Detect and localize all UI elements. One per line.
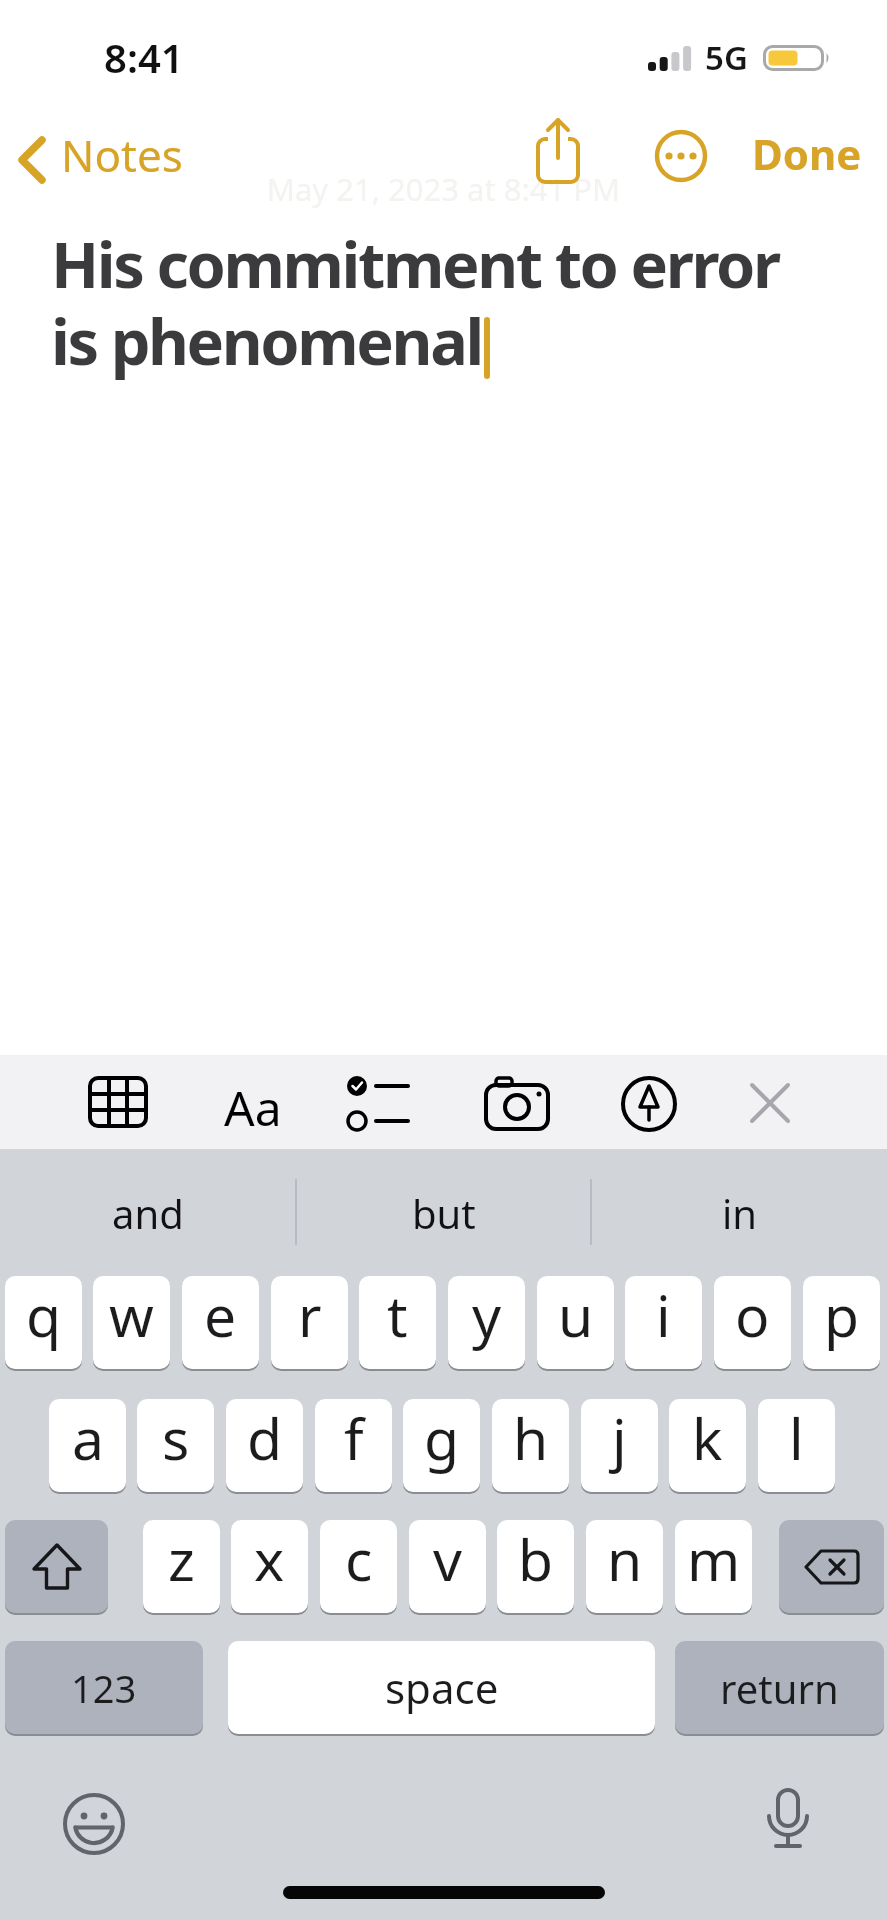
staticText: m (687, 1520, 741, 1598)
button[interactable]: c (320, 1520, 397, 1615)
staticText: e (204, 1276, 237, 1354)
staticText: Notes (61, 125, 183, 185)
button[interactable]: p (803, 1276, 880, 1371)
button[interactable] (748, 1081, 792, 1125)
button[interactable]: g (403, 1399, 480, 1494)
button[interactable] (60, 1790, 128, 1858)
staticText: f (344, 1399, 364, 1477)
staticText: n (607, 1520, 643, 1598)
button[interactable] (619, 1074, 679, 1134)
button[interactable]: m (675, 1520, 752, 1615)
button[interactable]: Notes (10, 125, 180, 187)
staticText: g (424, 1399, 460, 1477)
staticText: p (824, 1276, 860, 1354)
button[interactable] (779, 1520, 884, 1615)
staticText: Done (752, 125, 862, 182)
button[interactable] (527, 113, 589, 189)
button[interactable] (86, 1081, 150, 1141)
button[interactable] (484, 1077, 552, 1131)
button[interactable]: Aa (224, 1075, 282, 1140)
staticText: b (518, 1520, 554, 1598)
button[interactable]: return (675, 1641, 884, 1736)
button[interactable] (5, 1520, 108, 1615)
staticText: and (112, 1186, 184, 1240)
button[interactable]: i (625, 1276, 702, 1371)
button[interactable]: a (49, 1399, 126, 1494)
button[interactable]: j (581, 1399, 658, 1494)
staticText: y (472, 1276, 502, 1354)
staticText: i (656, 1276, 671, 1354)
staticText: but (412, 1186, 476, 1240)
staticText: w (109, 1276, 154, 1354)
button[interactable] (754, 1788, 822, 1862)
button[interactable]: k (669, 1399, 746, 1494)
staticText: v (433, 1520, 462, 1598)
button[interactable]: s (137, 1399, 214, 1494)
button[interactable]: l (758, 1399, 835, 1494)
button[interactable]: in (592, 1149, 887, 1276)
staticText: in (722, 1186, 758, 1240)
button[interactable] (650, 125, 712, 187)
button[interactable]: n (586, 1520, 663, 1615)
staticText: u (558, 1276, 594, 1354)
button[interactable]: Done (746, 125, 866, 187)
staticText: c (345, 1520, 373, 1598)
button[interactable]: h (492, 1399, 569, 1494)
button[interactable]: y (448, 1276, 525, 1371)
staticText: r (298, 1276, 322, 1354)
staticText: 123 (71, 1662, 137, 1714)
button[interactable]: q (5, 1276, 82, 1371)
button[interactable]: o (714, 1276, 791, 1371)
staticText: space (385, 1659, 499, 1716)
button[interactable]: d (226, 1399, 303, 1494)
button[interactable]: but (296, 1149, 591, 1276)
staticText: o (735, 1276, 770, 1354)
button[interactable]: r (271, 1276, 348, 1371)
button[interactable]: f (315, 1399, 392, 1494)
staticText: d (247, 1399, 283, 1477)
staticText: s (162, 1399, 190, 1477)
staticText: a (72, 1399, 104, 1477)
button[interactable]: v (409, 1520, 486, 1615)
button[interactable]: 123 (5, 1641, 203, 1736)
staticText: z (168, 1520, 195, 1598)
button[interactable]: b (497, 1520, 574, 1615)
staticText: t (387, 1276, 408, 1354)
staticText: 8:41 (104, 30, 184, 84)
button[interactable]: e (182, 1276, 259, 1371)
button[interactable]: x (231, 1520, 308, 1615)
staticText: h (513, 1399, 549, 1477)
staticText: 5G (705, 35, 748, 80)
button[interactable]: and (0, 1149, 295, 1276)
staticText: j (612, 1399, 627, 1477)
staticText: k (692, 1399, 723, 1477)
button[interactable]: u (537, 1276, 614, 1371)
staticText: x (254, 1520, 285, 1598)
staticText: May 21, 2023 at 8:41 PM (0, 168, 887, 210)
button[interactable]: w (93, 1276, 170, 1371)
button[interactable] (346, 1073, 412, 1135)
button[interactable]: space (228, 1641, 655, 1736)
button[interactable]: t (359, 1276, 436, 1371)
staticText: q (26, 1276, 62, 1354)
staticText: return (720, 1661, 839, 1715)
staticText: His commitment to error is phenomenal (51, 221, 779, 383)
staticText: l (789, 1399, 804, 1477)
button[interactable]: z (143, 1520, 220, 1615)
